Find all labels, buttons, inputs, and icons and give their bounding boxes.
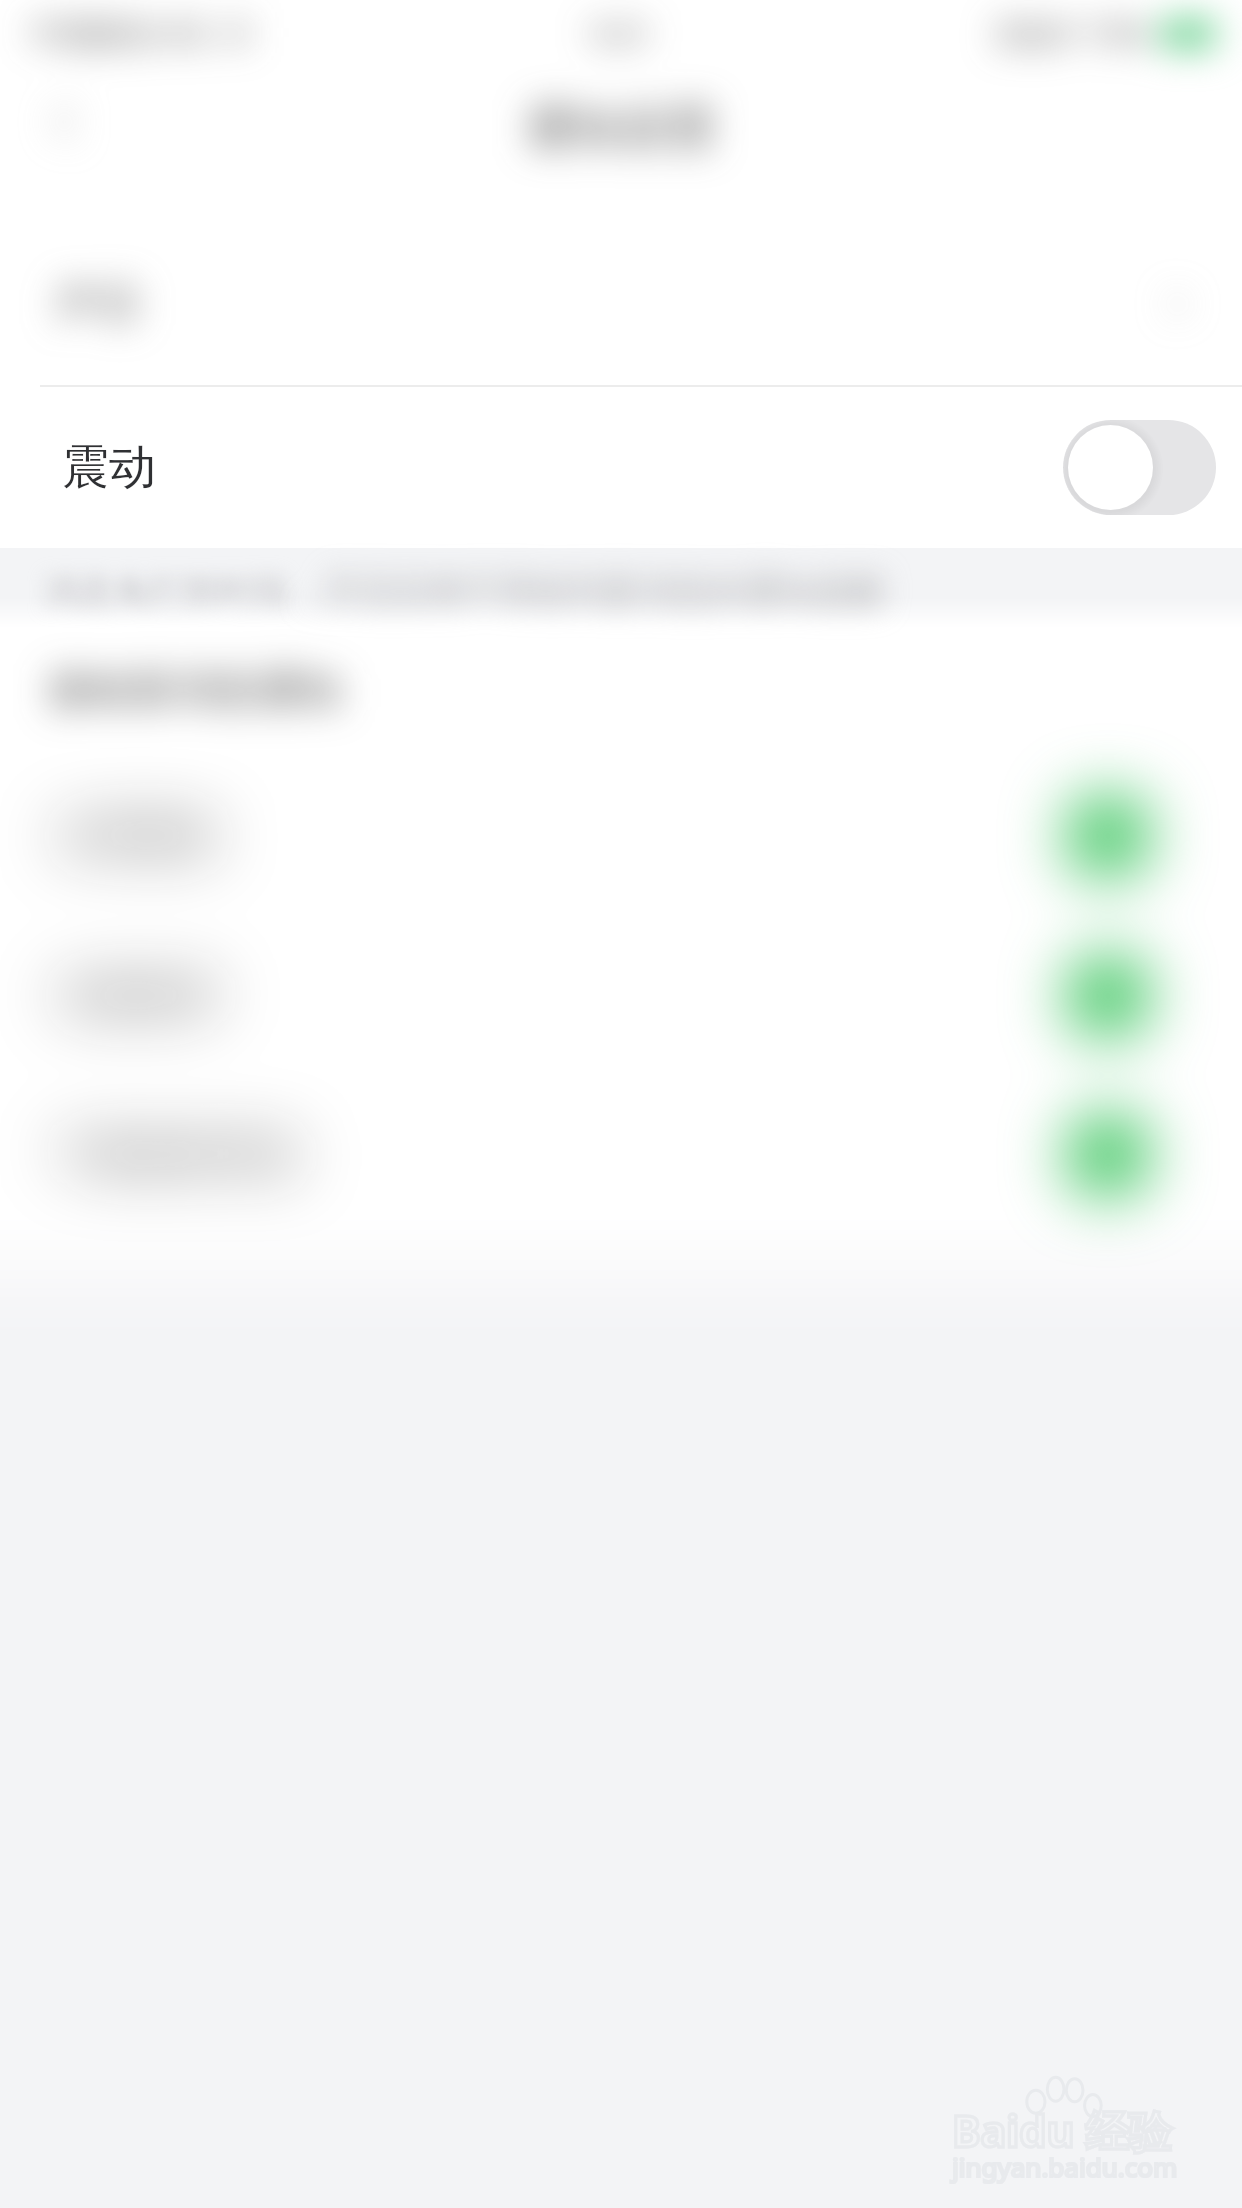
staticText: jingyan.baidu.com — [952, 2149, 1178, 2184]
staticText: 通知设置 — [525, 98, 717, 158]
staticText: 中国移动 4G ıll — [30, 11, 250, 55]
staticText: 声音 — [55, 277, 143, 332]
staticText: 接收新消息通知 — [48, 664, 342, 717]
staticText: 充电中 78% — [992, 13, 1150, 54]
staticText: 震动 — [62, 438, 156, 497]
button[interactable]: 不接收新消息 — [0, 1075, 1242, 1235]
staticText: Baidu 经验 — [952, 2101, 1172, 2160]
button[interactable]: 全部接收 — [0, 756, 1242, 916]
button[interactable]: 声音 — [0, 215, 1242, 393]
staticText: 不接收新消息 — [55, 1129, 301, 1181]
staticText: 仅接收群 — [55, 970, 219, 1022]
staticText: 9:41 — [590, 12, 652, 54]
staticText: ，开启后将不再收到新消息的通知提醒 — [290, 569, 885, 613]
button[interactable]: Vibration toggle — [1063, 420, 1216, 515]
staticText: 全部接收 — [55, 810, 219, 862]
button[interactable]: 仅接收群 — [0, 916, 1242, 1076]
button[interactable]: 震动 — [0, 388, 1242, 546]
staticText: 消息免打扰时段 — [44, 569, 289, 613]
